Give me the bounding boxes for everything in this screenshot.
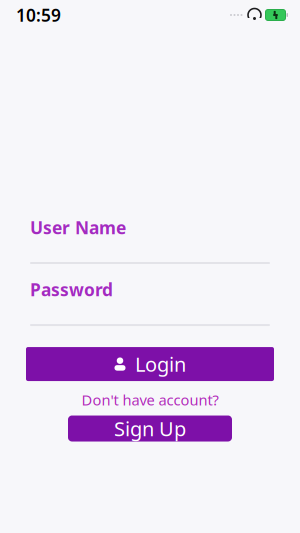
staticText: 10:59 xyxy=(16,3,61,26)
staticText: User Name xyxy=(30,216,126,239)
staticText: Password xyxy=(30,278,113,301)
button[interactable]: Sign Up xyxy=(68,415,232,441)
staticText: Login xyxy=(135,351,186,377)
staticText: Don't have account? xyxy=(81,390,218,409)
button[interactable]: Login xyxy=(26,347,274,381)
staticText: Sign Up xyxy=(114,415,186,442)
